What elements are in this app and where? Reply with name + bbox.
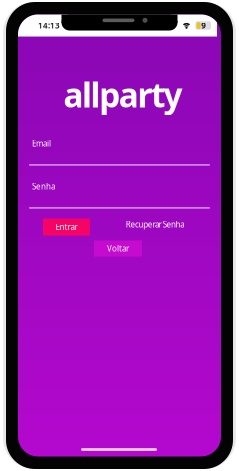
button[interactable]: Entrar	[43, 218, 90, 235]
staticText: allparty	[63, 72, 183, 117]
button[interactable]: Voltar	[94, 240, 142, 256]
staticText: 9	[201, 20, 206, 31]
staticText: Email	[32, 138, 51, 149]
staticText: Voltar	[107, 243, 129, 254]
button[interactable]: Recuperar Senha	[123, 217, 187, 231]
staticText: 14:13	[38, 20, 60, 31]
staticText: Senha	[32, 181, 55, 192]
staticText: Entrar	[55, 222, 77, 232]
staticText: Recuperar Senha	[126, 219, 184, 230]
